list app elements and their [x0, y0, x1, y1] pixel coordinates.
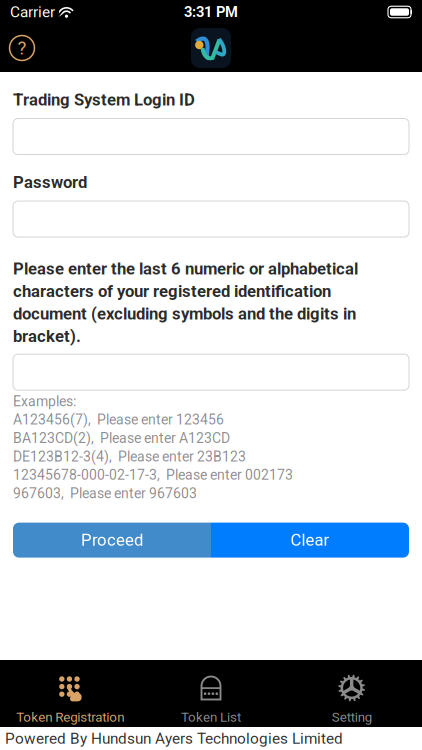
staticText: Proceed: [81, 530, 143, 550]
staticText: Token List: [181, 709, 241, 725]
button[interactable]: Token Registration: [0, 660, 141, 727]
staticText: ?: [17, 37, 26, 59]
button[interactable]: Help: [0, 25, 44, 71]
button[interactable]: Text field: [13, 354, 409, 390]
staticText: 967603, Please enter 967603: [13, 485, 197, 502]
staticText: Please enter the last 6 numeric or alpha…: [13, 259, 358, 346]
staticText: 3:31 PM: [184, 3, 238, 21]
staticText: Carrier: [10, 3, 55, 21]
staticText: Setting: [332, 709, 372, 725]
button[interactable]: Text field: [13, 118, 409, 154]
staticText: Clear: [290, 530, 329, 550]
staticText: Powered By Hundsun Ayers Technologies Li…: [5, 729, 343, 747]
staticText: 12345678-000-02-17-3, Please enter 00217…: [13, 467, 293, 483]
staticText: Token Registration: [16, 709, 124, 725]
staticText: DE123B12-3(4), Please enter 23B123: [13, 448, 246, 465]
button[interactable]: Clear: [211, 523, 409, 558]
button[interactable]: Proceed: [13, 523, 211, 558]
staticText: Examples:: [13, 393, 76, 410]
staticText: Password: [13, 172, 87, 192]
staticText: BA123CD(2), Please enter A123CD: [13, 430, 230, 446]
staticText: Trading System Login ID: [13, 90, 195, 109]
staticText: A123456(7), Please enter 123456: [13, 412, 224, 428]
button[interactable]: Token List: [141, 660, 281, 727]
button[interactable]: Setting: [281, 660, 422, 727]
button[interactable]: Text field: [13, 201, 409, 237]
